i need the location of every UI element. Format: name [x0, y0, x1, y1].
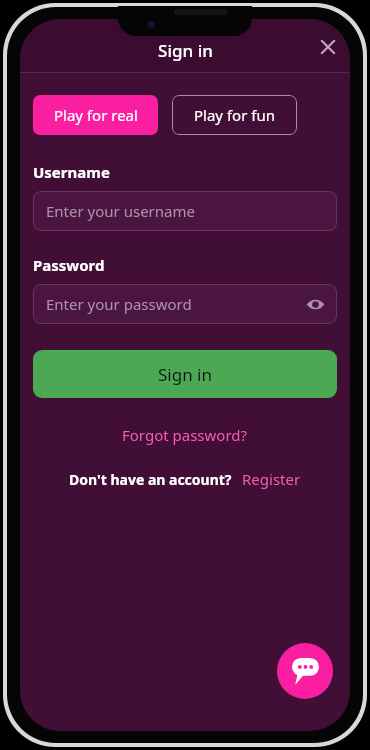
staticText: Forgot password? — [122, 425, 248, 445]
staticText: Password — [33, 255, 105, 275]
button[interactable]: Close — [306, 25, 350, 69]
button[interactable]: Enter your password — [33, 284, 337, 324]
staticText: Play for fun — [194, 105, 275, 125]
staticText: Enter your password — [46, 294, 192, 314]
button[interactable]: Show password — [299, 288, 331, 320]
button[interactable]: Register — [242, 466, 301, 492]
staticText: Register — [242, 469, 301, 489]
button[interactable]: Open chat support — [277, 643, 333, 699]
button[interactable]: Play for real — [33, 95, 158, 135]
staticText: Username — [33, 162, 110, 182]
staticText: Don't have an account? — [69, 470, 232, 489]
button[interactable]: Play for fun — [172, 95, 297, 135]
button[interactable]: Forgot password? — [116, 421, 254, 449]
staticText: Sign in — [158, 363, 212, 386]
staticText: Play for real — [54, 105, 138, 125]
staticText: Enter your username — [46, 201, 195, 221]
button[interactable]: Sign in — [33, 350, 337, 398]
button[interactable]: Enter your username — [33, 191, 337, 231]
staticText: Sign in — [158, 39, 213, 62]
